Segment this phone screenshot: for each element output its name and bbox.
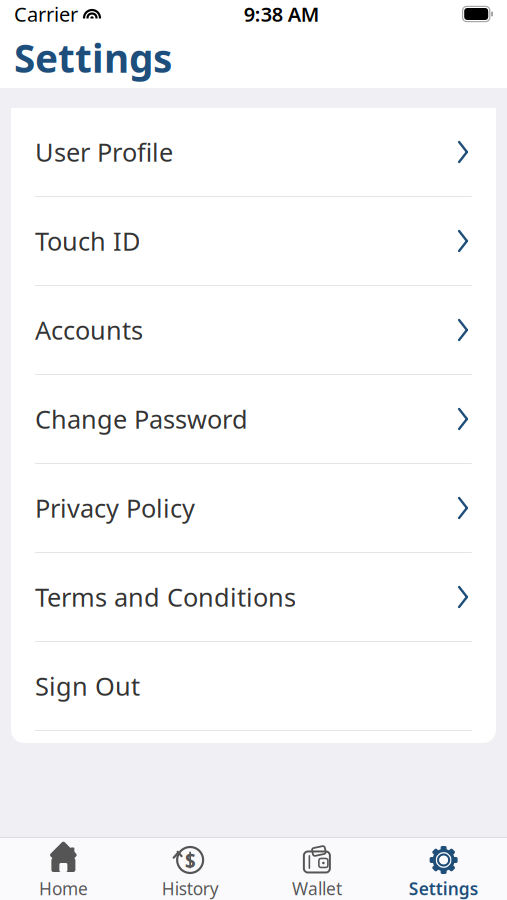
staticText: Home: [39, 877, 88, 900]
staticText: 9:38 AM: [244, 1, 320, 27]
staticText: Privacy Policy: [35, 491, 195, 525]
staticText: Wallet: [292, 877, 342, 900]
staticText: Touch ID: [35, 224, 140, 258]
button[interactable]: Terms and Conditions: [11, 553, 496, 641]
button[interactable]: Accounts: [11, 286, 496, 374]
button[interactable]: Wallet: [253, 838, 380, 900]
button[interactable]: Settings: [380, 838, 507, 900]
button[interactable]: User Profile: [11, 108, 496, 196]
staticText: Sign Out: [35, 669, 140, 703]
staticText: Carrier: [14, 1, 78, 27]
button[interactable]: Home: [0, 838, 127, 900]
staticText: User Profile: [35, 135, 173, 169]
button[interactable]: S: [127, 838, 254, 900]
staticText: Settings: [14, 32, 172, 83]
staticText: Terms and Conditions: [35, 580, 296, 614]
button[interactable]: Privacy Policy: [11, 464, 496, 552]
button[interactable]: Change Password: [11, 375, 496, 463]
button[interactable]: Touch ID: [11, 197, 496, 285]
staticText: Change Password: [35, 402, 248, 436]
staticText: History: [162, 877, 219, 900]
staticText: S: [185, 847, 196, 873]
button[interactable]: Sign Out: [11, 642, 496, 730]
staticText: Settings: [409, 877, 479, 900]
staticText: Accounts: [35, 313, 143, 347]
